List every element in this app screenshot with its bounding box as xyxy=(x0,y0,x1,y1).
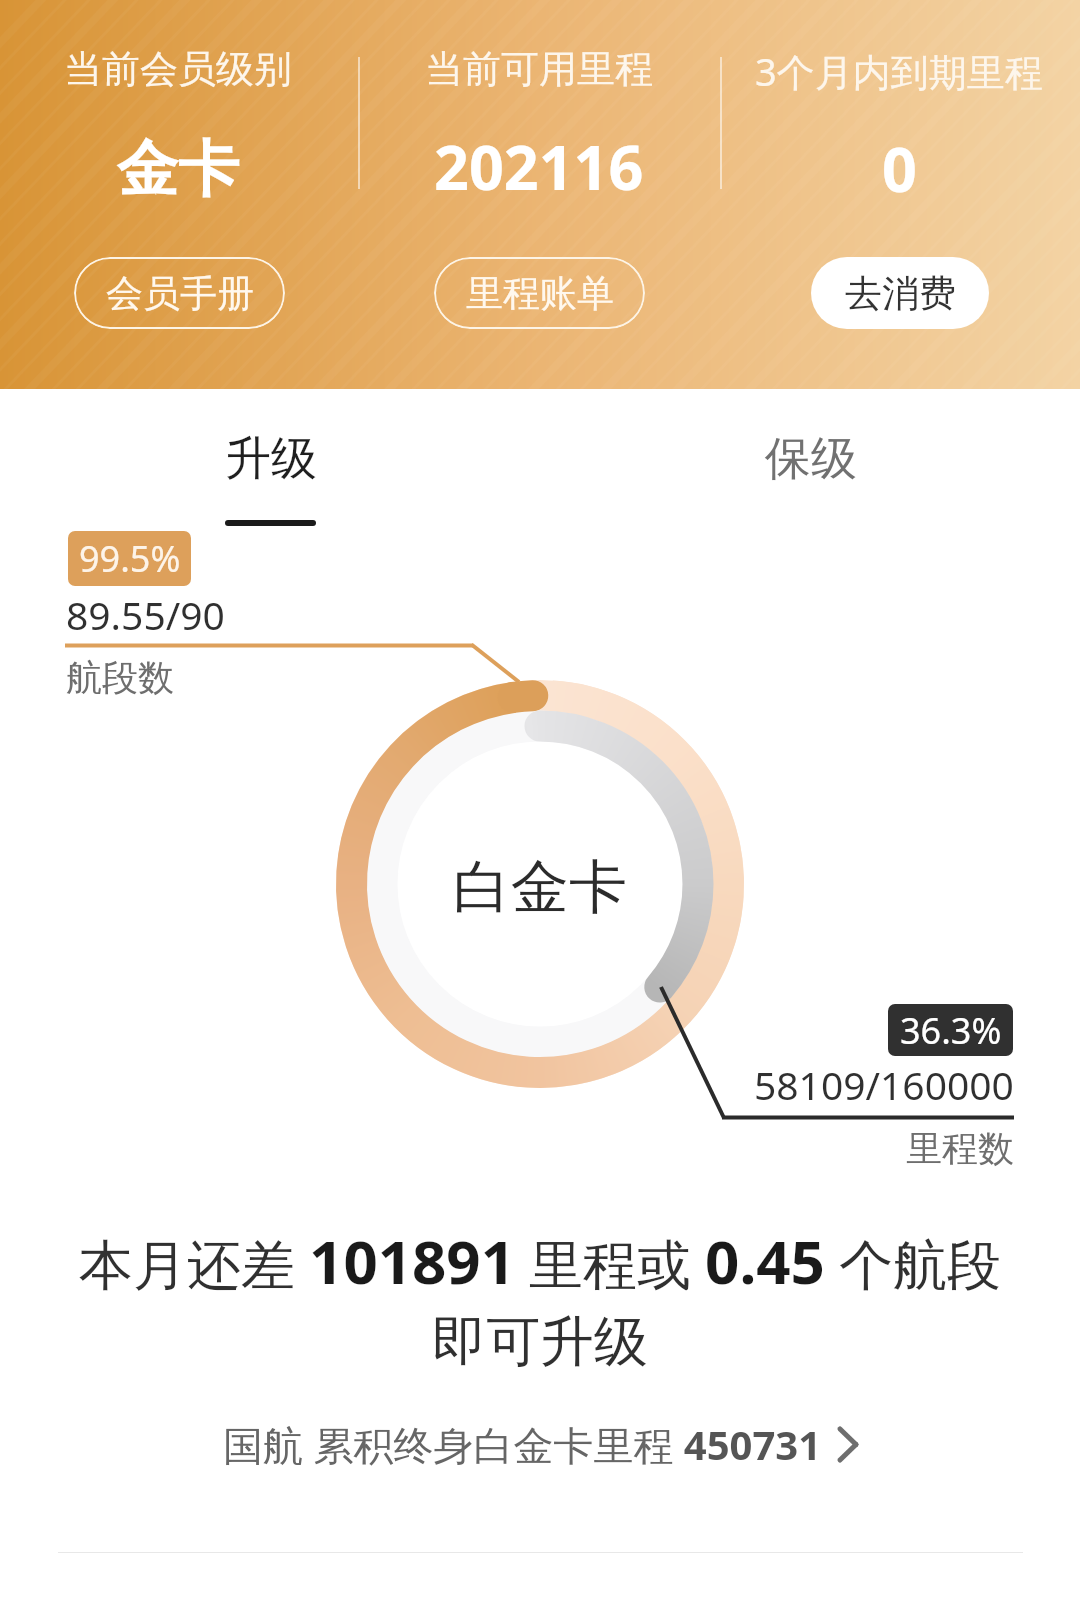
staticText: 3个月内到期里程 xyxy=(755,45,1043,97)
staticText: 保级 xyxy=(765,430,857,488)
staticText: 当前可用里程 xyxy=(425,45,653,93)
staticText: 本月还差 101891 里程或 0.45 个航段 xyxy=(79,1220,1001,1302)
staticText: 99.5% xyxy=(79,534,181,583)
staticText: 里程数 xyxy=(906,1126,1014,1171)
staticText: 金卡 xyxy=(117,131,239,208)
staticText: 国航 累积终身白金卡里程 450731 xyxy=(223,1417,822,1472)
staticText: 202116 xyxy=(434,125,644,208)
button[interactable]: 会员手册 xyxy=(74,257,285,329)
button[interactable]: 保级 xyxy=(540,395,1080,540)
staticText: 会员手册 xyxy=(106,270,254,317)
button[interactable]: 里程账单 xyxy=(434,257,645,329)
other: 查看详情 xyxy=(838,1427,858,1462)
staticText: 白金卡 xyxy=(453,851,627,924)
button[interactable]: 升级 xyxy=(0,395,540,540)
staticText: 0 xyxy=(882,127,917,210)
staticText: 升级 xyxy=(225,430,317,488)
staticText: 36.3% xyxy=(900,1006,1002,1055)
button[interactable]: 去消费 xyxy=(811,257,989,329)
staticText: 89.55/90 xyxy=(66,588,225,641)
staticText: 当前会员级别 xyxy=(64,45,292,93)
staticText: 航段数 xyxy=(66,655,174,700)
staticText: 58109/160000 xyxy=(754,1058,1014,1111)
staticText: 去消费 xyxy=(845,270,956,317)
button[interactable]: 国航 累积终身白金卡里程 450731 xyxy=(0,1409,1080,1479)
staticText: 即可升级 xyxy=(432,1308,648,1376)
staticText: 里程账单 xyxy=(466,270,614,317)
